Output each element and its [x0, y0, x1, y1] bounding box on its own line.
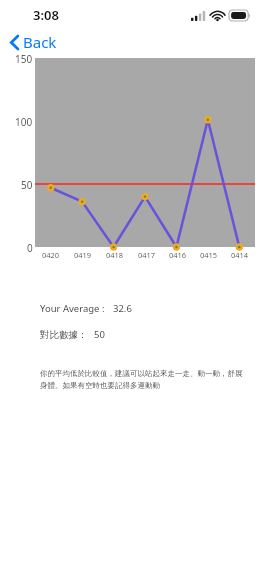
staticText: Your Average :	[40, 302, 105, 315]
staticText: 0420	[42, 250, 60, 260]
staticText: 3:08	[33, 6, 59, 24]
staticText: 0418	[106, 250, 124, 260]
staticText: 150	[15, 52, 33, 66]
staticText: 32.6	[113, 302, 132, 315]
staticText: 你的平均低於比較值，建議可以站起來走一走、動一動，舒展身體。如果有空時也要記得多…	[40, 369, 243, 390]
button[interactable]: Back	[8, 30, 59, 54]
staticText: 50	[21, 178, 33, 192]
staticText: 0	[27, 241, 33, 255]
staticText: 0415	[200, 250, 218, 260]
staticText: 對比數據：	[40, 329, 88, 341]
staticText: 0414	[231, 250, 249, 260]
staticText: 0416	[169, 250, 187, 260]
staticText: 50	[94, 328, 105, 341]
staticText: 0417	[138, 250, 156, 260]
staticText: 0419	[74, 250, 92, 260]
staticText: 100	[15, 115, 33, 129]
staticText: Back	[23, 32, 57, 52]
